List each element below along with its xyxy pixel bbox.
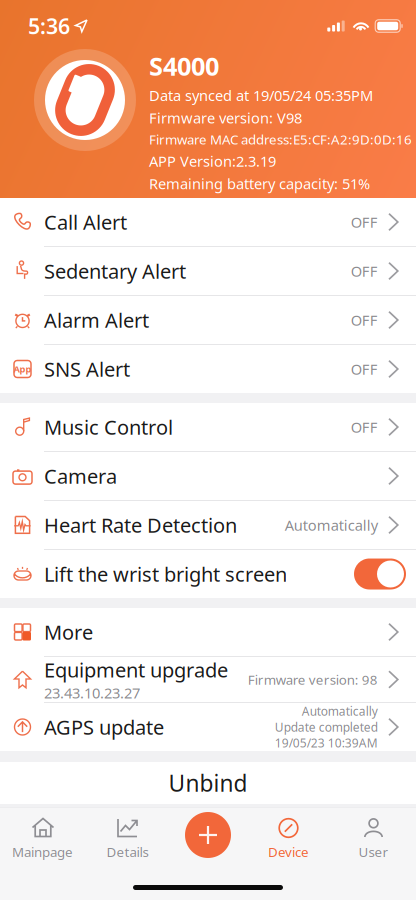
staticText: S4000 — [149, 49, 219, 83]
button[interactable]: Device — [246, 813, 331, 861]
button[interactable]: Call Alert — [0, 198, 416, 246]
staticText: Details — [106, 843, 148, 861]
staticText: APP Version:2.3.19 — [149, 151, 276, 171]
staticText: 5:36 — [28, 12, 70, 40]
button[interactable]: Details — [85, 813, 170, 861]
staticText: OFF — [351, 310, 378, 330]
button[interactable]: Add — [185, 812, 231, 858]
staticText: Heart Rate Detection — [44, 512, 237, 538]
button[interactable]: AGPS update — [0, 703, 416, 751]
button[interactable]: Camera — [0, 452, 416, 500]
button[interactable]: Music Control — [0, 403, 416, 451]
staticText: 23.43.10.23.27 — [44, 683, 140, 702]
staticText: User — [358, 843, 388, 861]
staticText: Lift the wrist bright screen — [44, 561, 287, 587]
button[interactable]: Alarm Alert — [0, 296, 416, 344]
staticText: Remaining battery capacity: 51% — [149, 174, 370, 193]
staticText: Update completed — [275, 719, 378, 735]
staticText: Device — [268, 843, 309, 861]
staticText: Equipment upgrade — [44, 656, 228, 683]
staticText: Music Control — [44, 414, 173, 440]
staticText: Data synced at 19/05/24 05:35PM — [149, 86, 373, 105]
button[interactable]: Sedentary Alert — [0, 247, 416, 295]
button[interactable]: More — [0, 608, 416, 656]
staticText: OFF — [351, 261, 378, 281]
button[interactable]: Heart Rate Detection — [0, 501, 416, 549]
staticText: Unbind — [168, 768, 247, 798]
staticText: OFF — [351, 359, 378, 379]
staticText: App — [13, 363, 31, 375]
staticText: Firmware MAC address:E5:CF:A2:9D:0D:16 — [149, 131, 412, 148]
staticText: Mainpage — [12, 843, 73, 861]
button[interactable]: Mainpage — [0, 813, 85, 861]
staticText: Camera — [44, 463, 117, 489]
button[interactable]: Unbind — [0, 762, 416, 804]
staticText: AGPS update — [44, 714, 164, 740]
staticText: Alarm Alert — [44, 307, 149, 333]
staticText: OFF — [351, 212, 378, 232]
staticText: SNS Alert — [44, 356, 130, 382]
staticText: Firmware version: V98 — [149, 108, 302, 128]
staticText: Sedentary Alert — [44, 258, 186, 284]
staticText: Automatically — [302, 703, 378, 719]
staticText: 19/05/23 10:39AM — [275, 735, 378, 751]
staticText: More — [44, 619, 93, 645]
staticText: Call Alert — [44, 209, 127, 235]
button[interactable]: App — [0, 345, 416, 393]
staticText: Automatically — [285, 515, 378, 535]
button[interactable]: Equipment upgrade — [0, 657, 416, 702]
staticText: Firmware version: 98 — [248, 671, 378, 688]
staticText: OFF — [351, 417, 378, 437]
button[interactable]: User — [331, 813, 416, 861]
button[interactable]: Lift the wrist bright screen — [0, 550, 416, 598]
